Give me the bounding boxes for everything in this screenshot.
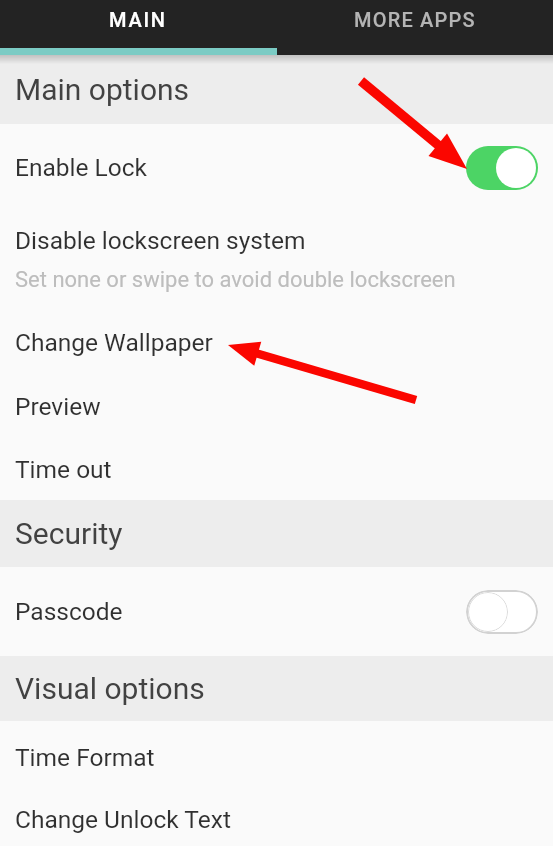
button[interactable]: Time Format [0,721,553,793]
button[interactable]: Disable lockscreen system [0,211,553,310]
button[interactable]: Change Wallpaper [0,310,553,374]
button[interactable]: MORE APPS [276,0,553,39]
staticText: Set none or swipe to avoid double locksc… [15,267,456,293]
staticText: Visual options [15,671,205,706]
staticText: MAIN [109,8,167,31]
staticText: Change Unlock Text [15,805,538,834]
staticText: Main options [15,72,190,107]
staticText: Passcode [15,597,466,626]
staticText: Enable Lock [15,153,466,182]
staticText: Time Format [15,743,538,772]
staticText: Change Wallpaper [15,328,538,357]
staticText: Disable lockscreen system [15,226,306,255]
button[interactable] [466,590,538,634]
button[interactable]: Time out [0,438,553,500]
button[interactable]: Passcode [0,567,553,656]
button[interactable] [466,146,538,190]
staticText: MORE APPS [354,8,476,31]
button[interactable]: Change Unlock Text [0,793,553,846]
button[interactable]: MAIN [0,0,276,39]
button[interactable]: Preview [0,374,553,438]
staticText: Preview [15,392,538,421]
staticText: Time out [15,455,538,484]
staticText: Security [15,516,123,551]
button[interactable]: Enable Lock [0,124,553,211]
